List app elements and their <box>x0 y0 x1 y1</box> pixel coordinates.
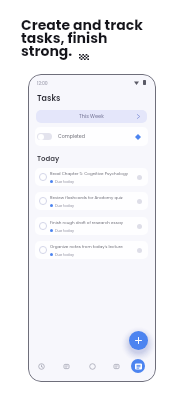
staticText: Due today <box>55 228 75 233</box>
staticText: Read Chapter 5: Cognitive Psychology <box>50 171 128 177</box>
staticText: Finish rough draft of research essay <box>50 220 123 226</box>
button[interactable]: Schedule <box>59 359 73 373</box>
staticText: This Week <box>79 113 104 120</box>
staticText: Due today <box>55 179 75 184</box>
button[interactable]: Read Chapter 5: Cognitive Psychology <box>35 168 148 186</box>
button[interactable]: Organize notes from today's lecture <box>35 241 148 259</box>
staticText: Create and track tasks, finish strong. <box>21 15 143 61</box>
button[interactable]: Add task <box>129 331 148 350</box>
button[interactable]: Timer <box>34 359 48 373</box>
staticText: Review flashcards for Anatomy quiz <box>50 195 123 201</box>
button[interactable]: Tasks <box>131 359 145 373</box>
button[interactable]: Focus <box>85 359 99 373</box>
button[interactable]: Finish rough draft of research essay <box>35 217 148 235</box>
staticText: Organize notes from today's lecture <box>50 244 123 250</box>
button[interactable]: This Week <box>36 110 147 123</box>
staticText: Today <box>37 154 60 164</box>
button[interactable]: Completed <box>35 127 148 146</box>
staticText: Due today <box>55 252 75 257</box>
button[interactable]: Calendar <box>109 359 123 373</box>
staticText: 12:00 <box>37 80 48 86</box>
staticText: Tasks <box>37 93 61 104</box>
button[interactable]: Review flashcards for Anatomy quiz <box>35 192 148 210</box>
staticText: Due today <box>55 203 75 208</box>
staticText: Completed <box>58 133 86 140</box>
